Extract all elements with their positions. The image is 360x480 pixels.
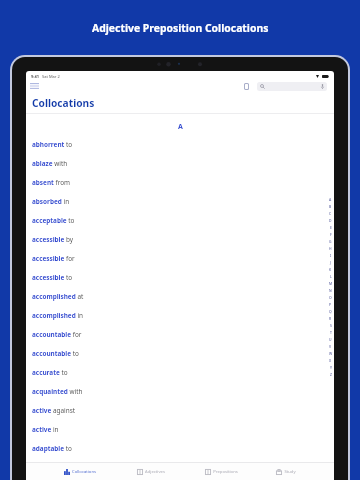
staticText: accessible for (32, 254, 75, 263)
staticText: Prepositions (213, 469, 238, 475)
staticText: accomplished at (32, 292, 84, 301)
button[interactable]: ablaze with (26, 154, 334, 173)
staticText: acquainted with (32, 387, 83, 396)
button[interactable]: accessible to (26, 268, 334, 287)
staticText: accountable to (32, 349, 79, 358)
staticText: active against (32, 406, 76, 415)
staticText: O (329, 295, 332, 300)
button[interactable]: Menu (28, 81, 41, 92)
staticText: G (329, 239, 332, 244)
button[interactable]: absent from (26, 173, 334, 192)
button[interactable]: abhorrent to (26, 135, 334, 154)
staticText: Q (329, 309, 332, 314)
staticText: V (329, 344, 332, 349)
staticText: W (329, 351, 333, 356)
staticText: M (329, 281, 333, 286)
button[interactable]: accomplished at (26, 287, 334, 306)
staticText: R (329, 316, 332, 321)
staticText: Collocations (72, 469, 96, 475)
button[interactable]: accessible for (26, 249, 334, 268)
staticText: E (330, 225, 332, 230)
staticText: adaptable to (32, 444, 72, 453)
staticText: I (330, 253, 332, 258)
staticText: A (329, 197, 332, 202)
staticText: absent from (32, 178, 71, 187)
staticText: L (330, 274, 332, 279)
staticText: Adjective Preposition Collocations (92, 21, 269, 35)
staticText: C (329, 211, 332, 216)
button[interactable]: Bookmarks (240, 81, 252, 92)
staticText: Sat Mar 2 (42, 74, 60, 79)
button[interactable]: acceptable to (26, 211, 334, 230)
button[interactable]: acquainted with (26, 382, 334, 401)
button[interactable]: Adjectives (111, 463, 191, 480)
button[interactable]: accountable to (26, 344, 334, 363)
staticText: H (329, 246, 332, 251)
staticText: D (329, 218, 332, 223)
staticText: active in (32, 425, 59, 434)
staticText: acceptable to (32, 216, 75, 225)
button[interactable]: accountable for (26, 325, 334, 344)
staticText: X (329, 358, 332, 363)
staticText: accurate to (32, 368, 68, 377)
staticText: 9:41 (31, 74, 39, 79)
staticText: B (329, 204, 332, 209)
staticText: accountable for (32, 330, 82, 339)
staticText: accessible to (32, 273, 73, 282)
button[interactable]: active against (26, 401, 334, 420)
button[interactable] (257, 82, 327, 91)
staticText: T (330, 330, 332, 335)
staticText: Z (330, 372, 332, 377)
staticText: accessible by (32, 235, 74, 244)
button[interactable]: accessible by (26, 230, 334, 249)
button[interactable]: adaptable to (26, 439, 334, 458)
button[interactable]: Collocations (40, 463, 120, 480)
staticText: S (330, 323, 332, 328)
button[interactable]: absorbed in (26, 192, 334, 211)
button[interactable]: Study (246, 463, 326, 480)
staticText: Adjectives (145, 469, 165, 475)
staticText: A (178, 122, 183, 132)
staticText: accomplished in (32, 311, 83, 320)
staticText: Collocations (32, 96, 95, 110)
button[interactable]: Prepositions (181, 463, 261, 480)
staticText: U (329, 337, 332, 342)
staticText: K (329, 267, 332, 272)
staticText: Study (284, 469, 296, 475)
button[interactable]: accurate to (26, 363, 334, 382)
staticText: absorbed in (32, 197, 70, 206)
button[interactable]: accomplished in (26, 306, 334, 325)
staticText: J (330, 260, 331, 265)
staticText: P (329, 302, 332, 307)
staticText: abhorrent to (32, 140, 73, 149)
button[interactable]: active in (26, 420, 334, 439)
staticText: ablaze with (32, 159, 68, 168)
staticText: Y (330, 365, 332, 370)
staticText: N (329, 288, 332, 293)
staticText: F (330, 232, 332, 237)
